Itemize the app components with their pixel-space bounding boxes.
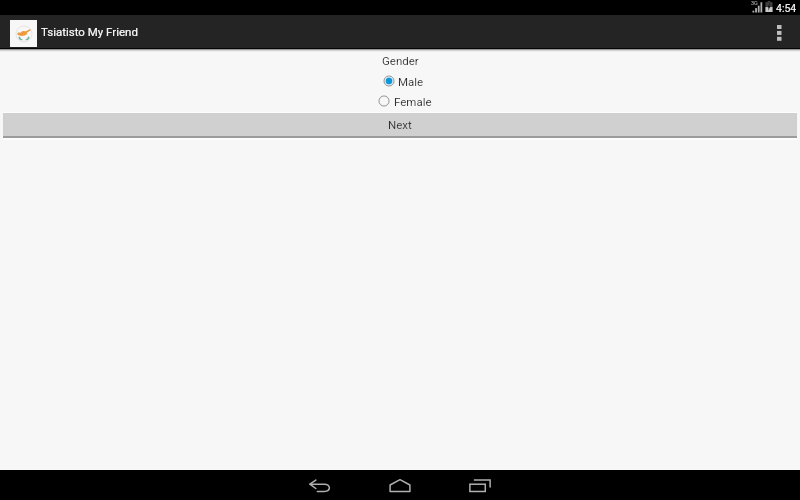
staticText: Female <box>394 95 432 108</box>
button[interactable]: Male <box>382 74 424 88</box>
staticText: Tsiatisto My Friend <box>41 25 138 38</box>
button[interactable]: More options <box>766 15 800 48</box>
button[interactable]: Back <box>300 470 340 500</box>
staticText: Male <box>398 75 424 88</box>
button[interactable]: Recents <box>460 470 500 500</box>
staticText: Next <box>388 118 412 131</box>
button[interactable]: Female <box>377 94 432 108</box>
staticText: Gender <box>382 54 419 67</box>
staticText: 4:54 <box>776 2 797 14</box>
staticText: 3G <box>751 0 758 6</box>
button[interactable]: Home <box>380 470 420 500</box>
button[interactable]: Next <box>3 112 797 138</box>
